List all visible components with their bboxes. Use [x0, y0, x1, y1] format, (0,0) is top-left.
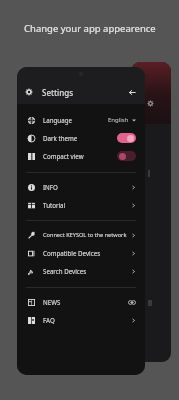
staticText: NEWS [43, 298, 61, 306]
staticText: INFO [43, 183, 58, 191]
button[interactable]: Language [17, 111, 145, 129]
button[interactable]: Back [127, 87, 138, 98]
button[interactable]: Tutorial [17, 196, 145, 214]
button[interactable]: INFO [17, 178, 145, 196]
staticText: Compatible Devices [43, 249, 101, 257]
staticText: English [108, 116, 129, 124]
button[interactable]: Toggle off [117, 151, 136, 161]
button[interactable]: Connect KEYSOL to the network [17, 226, 145, 244]
staticText: Settings [42, 87, 74, 98]
staticText: Tutorial [43, 201, 66, 209]
button[interactable]: Search Devices [17, 262, 145, 280]
button[interactable]: NEWS [17, 293, 145, 311]
button[interactable]: Compatible Devices [17, 244, 145, 262]
staticText: Compact view [43, 152, 84, 160]
staticText: FAQ [43, 316, 55, 324]
staticText: Dark theme [43, 134, 78, 142]
button[interactable]: FAQ [17, 311, 145, 329]
staticText: Language [43, 116, 72, 124]
button[interactable]: Settings [24, 87, 34, 97]
staticText: Change your app appearence [24, 22, 156, 35]
button[interactable]: Compact view [17, 147, 145, 165]
staticText: Connect KEYSOL to the network [43, 231, 127, 239]
staticText: Search Devices [43, 267, 87, 275]
button[interactable]: Toggle on [117, 133, 136, 143]
button[interactable]: Dark theme [17, 129, 145, 147]
